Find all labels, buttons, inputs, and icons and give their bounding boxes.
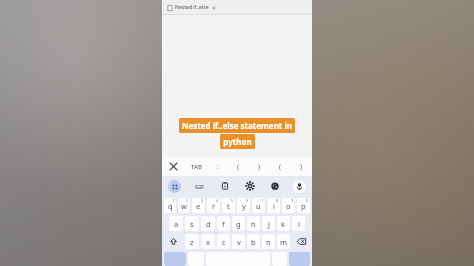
staticText: Nested if..else statement in: [182, 120, 292, 131]
staticText: m: [280, 237, 288, 247]
button[interactable]: (: [228, 157, 249, 176]
button[interactable]: u: [252, 198, 265, 213]
staticText: 5: [231, 198, 234, 203]
button[interactable]: Enter: [289, 252, 310, 266]
staticText: 4: [216, 198, 219, 203]
button[interactable]: v: [232, 234, 245, 249]
staticText: r: [212, 201, 216, 211]
button[interactable]: (: [270, 157, 291, 176]
button[interactable]: i: [267, 198, 280, 213]
button[interactable]: x: [201, 234, 215, 249]
button[interactable]: o: [282, 198, 295, 213]
button[interactable]: l: [292, 216, 305, 231]
button[interactable]: d: [201, 216, 215, 231]
button[interactable]: Symbols: [164, 252, 186, 266]
button[interactable]: m: [277, 234, 290, 249]
staticText: i: [273, 201, 275, 211]
staticText: 9: [291, 198, 294, 203]
button[interactable]: z: [185, 234, 199, 249]
button[interactable]: r: [207, 198, 220, 213]
staticText: h: [251, 219, 256, 229]
staticText: 8: [276, 198, 279, 203]
staticText: l: [298, 219, 300, 229]
staticText: e: [196, 201, 201, 211]
staticText: 7: [261, 198, 264, 203]
staticText: b: [251, 237, 256, 247]
staticText: GIF: [195, 183, 205, 190]
button[interactable]: g: [232, 216, 245, 231]
button[interactable]: Clipboard: [212, 176, 237, 196]
staticText: 2: [186, 198, 189, 203]
staticText: y: [242, 201, 246, 211]
button[interactable]: Voice input: [287, 176, 312, 196]
button[interactable]: Themes: [262, 176, 287, 196]
button[interactable]: t: [222, 198, 235, 213]
button[interactable]: TAB: [184, 157, 208, 176]
button[interactable]: :: [208, 157, 228, 176]
button[interactable]: n: [262, 234, 275, 249]
button[interactable]: Shift: [164, 234, 183, 249]
button[interactable]: h: [247, 216, 260, 231]
staticText: :: [217, 162, 219, 172]
button[interactable]: Close suggestions: [162, 157, 184, 176]
staticText: ): [258, 162, 261, 172]
staticText: 1: [172, 198, 175, 203]
button[interactable]: Settings: [237, 176, 262, 196]
button[interactable]: ): [291, 157, 312, 176]
staticText: c: [222, 237, 226, 247]
button[interactable]: w: [178, 198, 190, 213]
staticText: t: [227, 201, 230, 211]
staticText: (: [237, 162, 240, 172]
button[interactable]: Backspace: [292, 234, 310, 249]
button[interactable]: GIF: [187, 176, 212, 196]
button[interactable]: ): [249, 157, 270, 176]
staticText: w: [181, 201, 187, 211]
staticText: o: [286, 201, 291, 211]
staticText: x: [206, 237, 210, 247]
staticText: k: [281, 219, 286, 229]
staticText: TAB: [191, 163, 202, 171]
button[interactable]: q: [164, 198, 176, 213]
staticText: Nested if..else: [175, 4, 209, 11]
button[interactable]: c: [217, 234, 230, 249]
button[interactable]: f: [217, 216, 230, 231]
staticText: u: [256, 201, 261, 211]
staticText: f: [222, 219, 225, 229]
button[interactable]: p: [297, 198, 310, 213]
button[interactable]: b: [247, 234, 260, 249]
staticText: (: [279, 162, 282, 172]
button[interactable]: Emoji keyboard: [162, 176, 187, 196]
staticText: 6: [246, 198, 249, 203]
staticText: q: [168, 201, 173, 211]
staticText: 0: [306, 198, 309, 203]
staticText: 3: [201, 198, 204, 203]
staticText: z: [190, 237, 194, 247]
button[interactable]: a: [169, 216, 183, 231]
staticText: s: [190, 219, 194, 229]
staticText: p: [301, 201, 306, 211]
button[interactable]: j: [262, 216, 275, 231]
staticText: python: [223, 136, 252, 147]
staticText: ): [300, 162, 303, 172]
button[interactable]: Browser tab Nested if..else: [162, 0, 312, 15]
staticText: d: [206, 219, 211, 229]
staticText: a: [174, 219, 179, 229]
button[interactable]: s: [185, 216, 199, 231]
button[interactable]: y: [237, 198, 250, 213]
staticText: j: [268, 219, 270, 229]
staticText: v: [237, 237, 241, 247]
button[interactable]: k: [277, 216, 290, 231]
button[interactable]: e: [192, 198, 205, 213]
staticText: g: [236, 219, 241, 229]
staticText: n: [266, 237, 271, 247]
